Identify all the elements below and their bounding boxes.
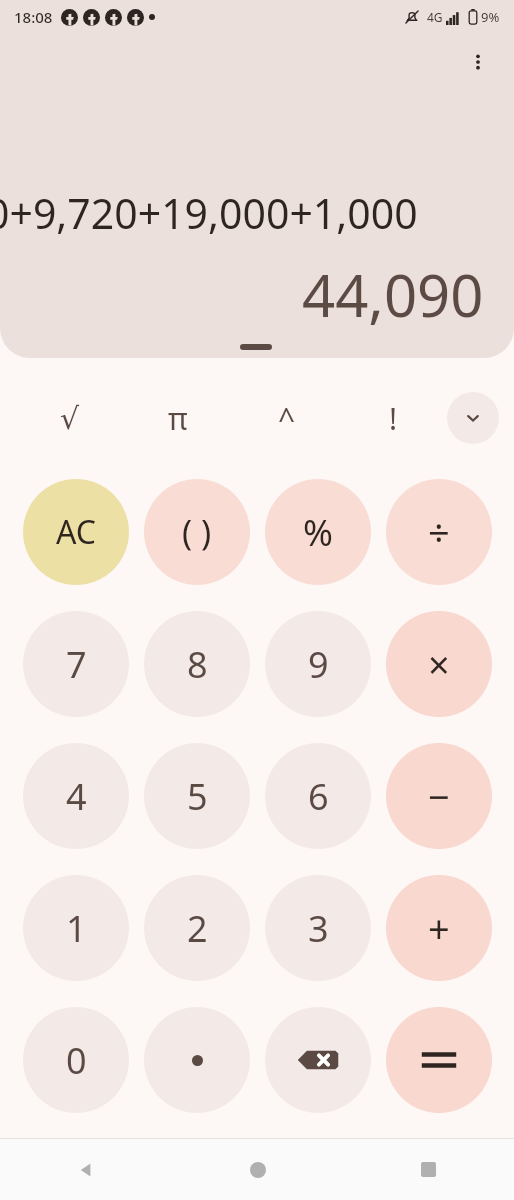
staticText: 7 — [66, 640, 87, 689]
staticText: 6 — [308, 772, 329, 821]
staticText: 8 — [187, 640, 208, 689]
staticText: 5 — [187, 772, 208, 821]
button[interactable]: + — [386, 875, 492, 981]
staticText: ( ) — [182, 509, 212, 555]
staticText: 1 — [66, 904, 87, 953]
staticText: AC — [56, 510, 97, 554]
button[interactable]: 2 — [144, 875, 250, 981]
staticText: 3 — [308, 904, 329, 953]
button[interactable]: 8 — [144, 611, 250, 717]
button[interactable]: AC — [23, 479, 129, 585]
button[interactable]: ! — [363, 388, 423, 448]
button[interactable]: √ — [40, 388, 100, 448]
button[interactable]: ^ — [257, 388, 317, 448]
staticText: − — [428, 770, 450, 822]
button[interactable]: 9 — [265, 611, 371, 717]
button[interactable]: 3 — [265, 875, 371, 981]
staticText: 0+9,720+19,000+1,000 — [0, 185, 418, 241]
button[interactable] — [144, 1007, 250, 1113]
button[interactable]: More options — [456, 40, 500, 84]
button[interactable]: 0 — [23, 1007, 129, 1113]
button[interactable]: π — [148, 388, 208, 448]
button[interactable]: Expand — [447, 392, 499, 444]
button[interactable]: ÷ — [386, 479, 492, 585]
button[interactable]: Back — [0, 1139, 172, 1200]
button[interactable]: − — [386, 743, 492, 849]
button[interactable]: Recents — [343, 1139, 514, 1200]
staticText: 2 — [187, 904, 208, 953]
button[interactable]: × — [386, 611, 492, 717]
staticText: √ — [60, 401, 80, 436]
staticText: 4G — [427, 9, 443, 25]
button[interactable]: 5 — [144, 743, 250, 849]
button[interactable]: Backspace — [265, 1007, 371, 1113]
button[interactable]: Home — [172, 1139, 343, 1200]
staticText: % — [303, 508, 333, 557]
button[interactable]: 1 — [23, 875, 129, 981]
button[interactable]: 6 — [265, 743, 371, 849]
staticText: ÷ — [428, 506, 450, 558]
button[interactable]: 4 — [23, 743, 129, 849]
staticText: 18:08 — [14, 7, 53, 27]
staticText: + — [428, 902, 450, 954]
staticText: × — [428, 638, 450, 690]
staticText: 4 — [66, 772, 87, 821]
staticText: 9% — [481, 8, 500, 26]
staticText: ! — [389, 398, 398, 439]
staticText: 9 — [308, 640, 329, 689]
button[interactable]: % — [265, 479, 371, 585]
staticText: 0 — [66, 1036, 87, 1085]
staticText: ^ — [278, 398, 296, 439]
staticText: π — [168, 398, 188, 439]
button[interactable]: ( ) — [144, 479, 250, 585]
button[interactable]: 7 — [23, 611, 129, 717]
button[interactable] — [386, 1007, 492, 1113]
staticText: 44,090 — [302, 255, 484, 334]
